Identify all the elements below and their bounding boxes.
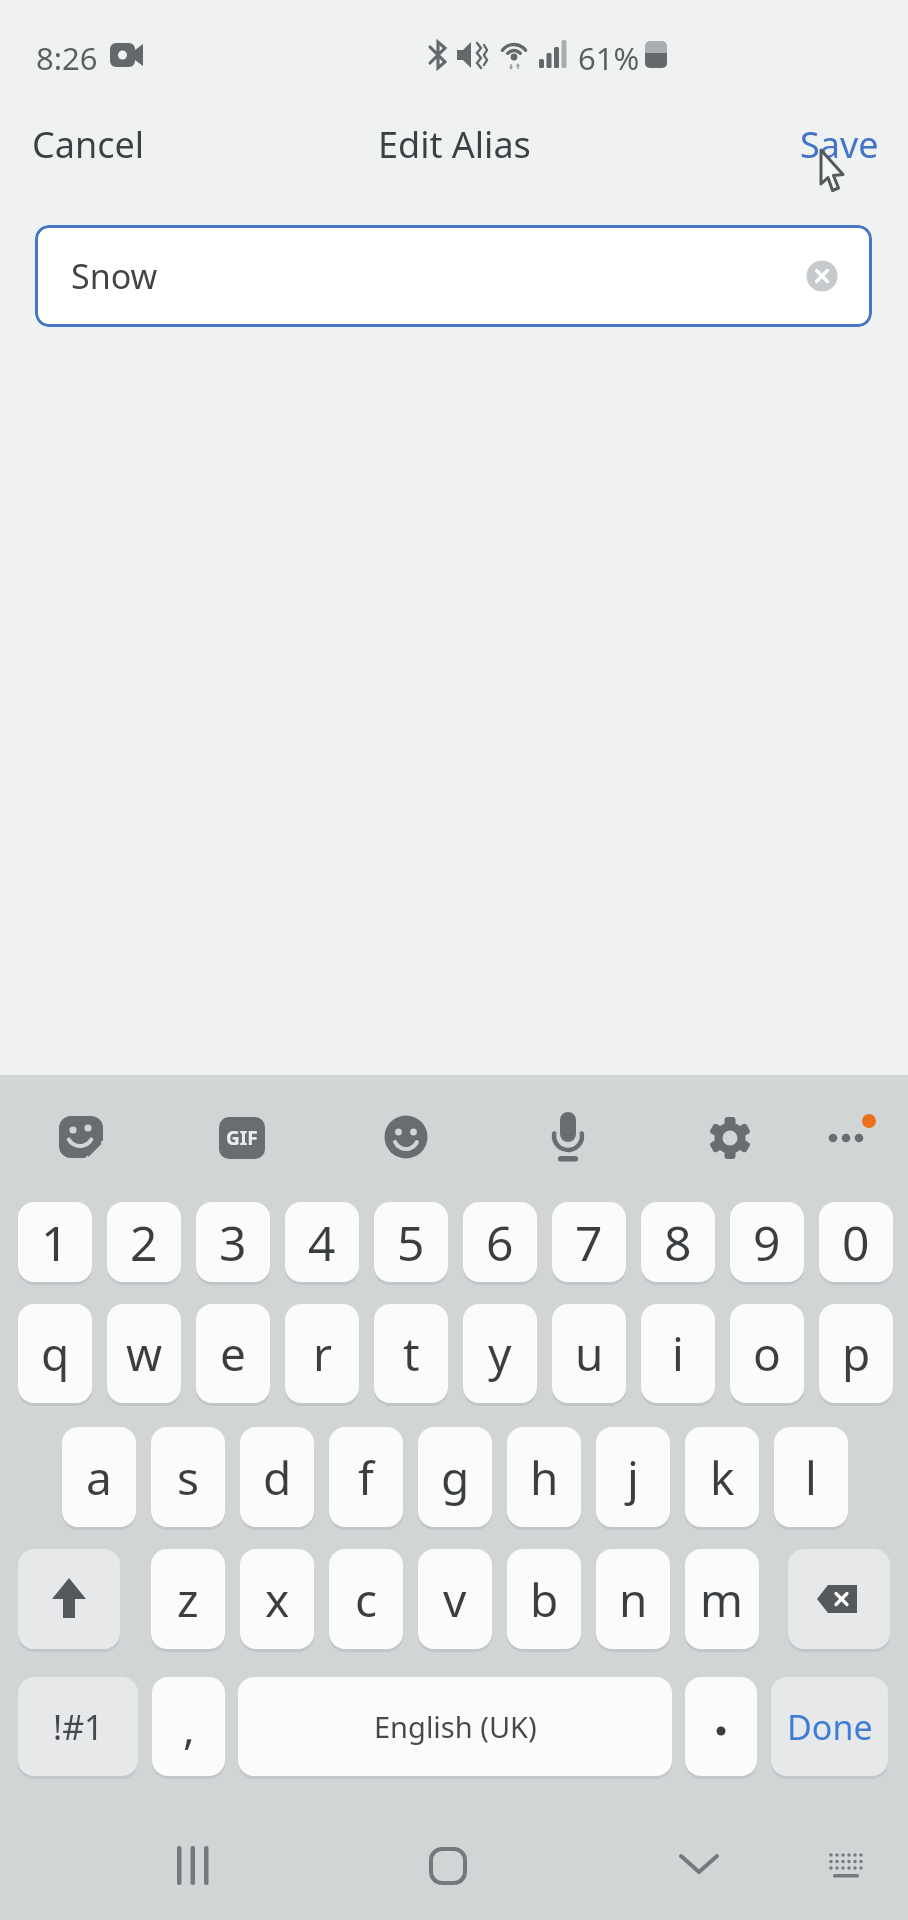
staticText: GIF (226, 1125, 258, 1151)
staticText: z (177, 1568, 199, 1631)
staticText: 6 (486, 1210, 514, 1275)
staticText: g (441, 1446, 470, 1509)
staticText: Edit Alias (378, 120, 531, 169)
staticText: e (220, 1322, 246, 1385)
button[interactable]: Snow (35, 225, 872, 327)
button[interactable]: 7 (552, 1202, 626, 1282)
staticText: 8:26 (36, 37, 98, 79)
button[interactable]: j (596, 1427, 670, 1527)
staticText: k (710, 1446, 735, 1509)
button[interactable] (429, 1847, 467, 1885)
staticText: t (403, 1322, 420, 1385)
staticText: y (488, 1322, 512, 1385)
button[interactable] (177, 1846, 213, 1886)
button[interactable]: b (507, 1549, 581, 1649)
staticText: d (263, 1446, 292, 1509)
button[interactable]: u (552, 1304, 626, 1403)
button[interactable]: Cancel (32, 120, 145, 169)
button[interactable]: m (685, 1549, 759, 1649)
staticText: x (265, 1568, 290, 1631)
staticText: 5 (397, 1210, 425, 1275)
button[interactable] (788, 1549, 890, 1649)
staticText: English (UK) (374, 1707, 537, 1746)
staticText: w (126, 1322, 163, 1385)
staticText: 3 (219, 1210, 247, 1275)
button[interactable] (18, 1549, 120, 1649)
staticText: 4 (308, 1210, 336, 1275)
button[interactable]: s (151, 1427, 225, 1527)
button[interactable]: p (819, 1304, 893, 1403)
button[interactable] (384, 1115, 428, 1159)
staticText: v (443, 1568, 467, 1631)
button[interactable]: q (18, 1304, 92, 1403)
staticText: f (358, 1446, 374, 1509)
button[interactable]: o (730, 1304, 804, 1403)
staticText: l (805, 1446, 817, 1509)
button[interactable]: e (196, 1304, 270, 1403)
staticText: i (672, 1322, 684, 1385)
staticText: u (575, 1322, 604, 1385)
button[interactable] (708, 1116, 752, 1160)
button[interactable]: 0 (819, 1202, 893, 1282)
button[interactable] (826, 1110, 878, 1150)
button[interactable]: y (463, 1304, 537, 1403)
button[interactable]: k (685, 1427, 759, 1527)
button[interactable]: l (774, 1427, 848, 1527)
button[interactable]: c (329, 1549, 403, 1649)
button[interactable]: w (107, 1304, 181, 1403)
button[interactable]: 9 (730, 1202, 804, 1282)
button[interactable]: n (596, 1549, 670, 1649)
staticText: a (86, 1446, 112, 1509)
button[interactable]: t (374, 1304, 448, 1403)
button[interactable]: v (418, 1549, 492, 1649)
button[interactable]: r (285, 1304, 359, 1403)
staticText: m (700, 1568, 744, 1631)
button[interactable]: f (329, 1427, 403, 1527)
button[interactable] (827, 1850, 865, 1880)
button[interactable]: 6 (463, 1202, 537, 1282)
button[interactable]: 1 (18, 1202, 92, 1282)
staticText: !#1 (53, 1704, 104, 1750)
staticText: b (530, 1568, 559, 1631)
button[interactable] (806, 260, 838, 292)
button[interactable] (679, 1850, 719, 1880)
button[interactable]: h (507, 1427, 581, 1527)
button[interactable]: d (240, 1427, 314, 1527)
button[interactable]: g (418, 1427, 492, 1527)
staticText: p (842, 1322, 871, 1385)
button[interactable] (548, 1112, 588, 1164)
staticText: r (313, 1322, 332, 1385)
button[interactable] (59, 1116, 105, 1160)
button[interactable]: Save (800, 120, 879, 169)
staticText: 61% (578, 37, 640, 79)
staticText: Snow (71, 253, 158, 299)
button[interactable]: 3 (196, 1202, 270, 1282)
button[interactable]: a (62, 1427, 136, 1527)
staticText: 9 (753, 1210, 781, 1275)
button[interactable]: i (641, 1304, 715, 1403)
staticText: o (753, 1322, 781, 1385)
button[interactable]: z (151, 1549, 225, 1649)
staticText: h (530, 1446, 559, 1509)
staticText: q (41, 1322, 70, 1385)
button[interactable]: 8 (641, 1202, 715, 1282)
staticText: c (355, 1568, 378, 1631)
button[interactable] (685, 1677, 757, 1776)
button[interactable]: English (UK) (238, 1677, 672, 1776)
staticText: 0 (842, 1210, 870, 1275)
button[interactable]: GIF (219, 1117, 265, 1159)
button[interactable]: 5 (374, 1202, 448, 1282)
staticText: , (183, 1697, 195, 1757)
button[interactable]: 4 (285, 1202, 359, 1282)
staticText: s (177, 1446, 200, 1509)
staticText: n (619, 1568, 648, 1631)
button[interactable]: x (240, 1549, 314, 1649)
button[interactable]: 2 (107, 1202, 181, 1282)
button[interactable]: Done (771, 1677, 888, 1776)
staticText: 1 (41, 1210, 69, 1275)
staticText: Done (787, 1704, 873, 1750)
staticText: 2 (130, 1210, 158, 1275)
button[interactable]: !#1 (18, 1677, 138, 1776)
button[interactable]: , (152, 1677, 225, 1776)
staticText: 7 (575, 1210, 603, 1275)
